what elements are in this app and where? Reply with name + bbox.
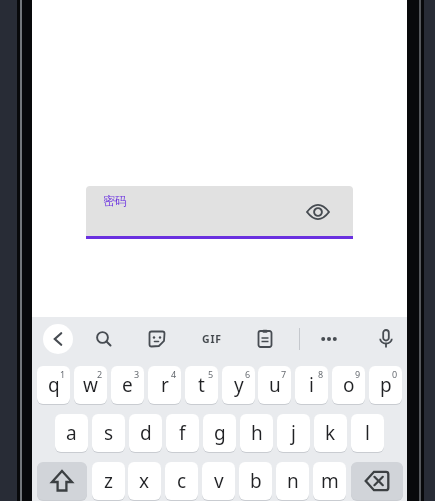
- button[interactable]: d: [129, 414, 162, 452]
- staticText: t: [198, 372, 205, 398]
- button[interactable]: s: [92, 414, 125, 452]
- button[interactable]: k: [314, 414, 347, 452]
- button[interactable]: e: [111, 366, 144, 404]
- button[interactable]: y: [222, 366, 255, 404]
- staticText: 8: [318, 368, 324, 380]
- staticText: 1: [60, 368, 66, 380]
- staticText: v: [214, 468, 224, 494]
- staticText: p: [380, 372, 392, 398]
- staticText: l: [365, 420, 370, 446]
- staticText: 6: [245, 368, 251, 380]
- button[interactable]: u: [258, 366, 291, 404]
- button[interactable]: [372, 325, 400, 353]
- button[interactable]: n: [276, 462, 309, 500]
- staticText: n: [287, 468, 299, 494]
- staticText: c: [177, 468, 187, 494]
- staticText: o: [343, 372, 355, 398]
- staticText: g: [214, 420, 226, 446]
- button[interactable]: x: [128, 462, 161, 500]
- button[interactable]: g: [203, 414, 236, 452]
- staticText: 0: [392, 368, 398, 380]
- staticText: b: [250, 468, 262, 494]
- button[interactable]: [37, 462, 87, 500]
- button[interactable]: GIF: [196, 329, 228, 349]
- staticText: r: [161, 372, 169, 398]
- staticText: 密码: [103, 193, 127, 208]
- button[interactable]: m: [313, 462, 346, 500]
- button[interactable]: a: [55, 414, 88, 452]
- staticText: k: [325, 420, 336, 446]
- staticText: y: [234, 372, 244, 398]
- button[interactable]: [351, 462, 403, 500]
- staticText: 3: [134, 368, 140, 380]
- staticText: 2: [97, 368, 103, 380]
- button[interactable]: w: [74, 366, 107, 404]
- staticText: GIF: [202, 332, 222, 346]
- staticText: u: [269, 372, 281, 398]
- staticText: s: [104, 420, 114, 446]
- button[interactable]: 密码: [86, 186, 353, 239]
- staticText: z: [104, 468, 113, 494]
- button[interactable]: o: [332, 366, 365, 404]
- button[interactable]: j: [277, 414, 310, 452]
- button[interactable]: b: [239, 462, 272, 500]
- staticText: j: [291, 420, 296, 446]
- button[interactable]: p: [369, 366, 402, 404]
- staticText: a: [66, 420, 77, 446]
- button[interactable]: l: [351, 414, 384, 452]
- button[interactable]: [315, 325, 343, 353]
- staticText: i: [309, 372, 314, 398]
- button[interactable]: [143, 325, 171, 353]
- staticText: 9: [355, 368, 361, 380]
- staticText: h: [251, 420, 263, 446]
- button[interactable]: z: [92, 462, 125, 500]
- staticText: q: [48, 372, 60, 398]
- button[interactable]: c: [165, 462, 198, 500]
- staticText: x: [139, 468, 150, 494]
- button[interactable]: t: [185, 366, 218, 404]
- button[interactable]: h: [240, 414, 273, 452]
- staticText: f: [179, 420, 186, 446]
- button[interactable]: f: [166, 414, 199, 452]
- button[interactable]: [90, 325, 118, 353]
- staticText: 5: [208, 368, 214, 380]
- staticText: 7: [281, 368, 287, 380]
- staticText: e: [122, 372, 133, 398]
- staticText: d: [140, 420, 152, 446]
- staticText: w: [83, 372, 98, 398]
- button[interactable]: i: [295, 366, 328, 404]
- button[interactable]: [251, 325, 279, 353]
- button[interactable]: q: [37, 366, 70, 404]
- button[interactable]: [43, 324, 73, 354]
- staticText: 4: [171, 368, 177, 380]
- button[interactable]: r: [148, 366, 181, 404]
- staticText: m: [321, 468, 339, 494]
- button[interactable]: v: [202, 462, 235, 500]
